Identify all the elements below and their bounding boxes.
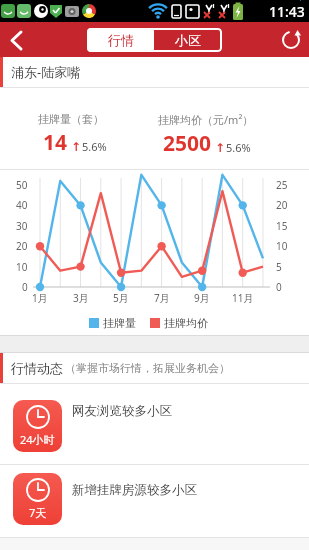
staticText: 14	[43, 128, 68, 157]
staticText: 40	[16, 198, 28, 212]
staticText: 2500	[163, 129, 212, 158]
staticText: 7天	[29, 505, 47, 520]
button[interactable]: 7天	[13, 473, 62, 525]
staticText: 0	[276, 280, 282, 294]
staticText: 0	[22, 280, 28, 294]
staticText: 5.6%	[226, 140, 251, 155]
staticText: 网友浏览较多小区	[72, 403, 172, 419]
staticText: 30	[16, 219, 28, 233]
button[interactable]: 小区	[154, 28, 222, 52]
button[interactable]: 24小时	[0, 384, 309, 465]
button[interactable]	[273, 22, 309, 57]
staticText: 新增挂牌房源较多小区	[72, 482, 197, 498]
staticText: 10	[276, 239, 288, 253]
staticText: 3月	[73, 291, 89, 305]
staticText: 20	[276, 198, 288, 212]
staticText: 25	[276, 178, 288, 192]
staticText: 7月	[154, 291, 170, 305]
staticText: 9月	[194, 291, 210, 305]
button[interactable]: 浦东-陆家嘴	[0, 57, 309, 88]
staticText: 50	[16, 178, 28, 192]
staticText: 行情	[108, 32, 134, 48]
staticText: 5.6%	[82, 139, 107, 154]
staticText: 行情动态	[11, 360, 63, 376]
staticText: 10	[16, 260, 28, 274]
staticText: 20	[16, 239, 28, 253]
staticText: 1月	[32, 291, 48, 305]
button[interactable]	[0, 23, 34, 57]
staticText: 挂牌均价	[164, 316, 208, 330]
staticText: 浦东-陆家嘴	[11, 63, 81, 81]
staticText: 15	[276, 219, 288, 233]
staticText: 5	[276, 260, 282, 274]
staticText: 小区	[175, 32, 201, 48]
button[interactable]: 7天	[0, 465, 309, 538]
staticText: ↑	[215, 141, 226, 155]
staticText: 11:43	[269, 2, 305, 21]
staticText: 挂牌量	[103, 316, 136, 330]
button[interactable]: 行情	[87, 28, 154, 52]
staticText: 5月	[113, 291, 129, 305]
staticText: 24小时	[20, 432, 55, 447]
button[interactable]: 24小时	[13, 400, 62, 452]
staticText: 挂牌均价（元/m²）	[158, 112, 254, 127]
staticText: ↑	[71, 140, 82, 154]
staticText: （掌握市场行情，拓展业务机会）	[65, 361, 230, 375]
staticText: 11月	[232, 291, 254, 305]
staticText: 挂牌量（套）	[38, 112, 104, 126]
